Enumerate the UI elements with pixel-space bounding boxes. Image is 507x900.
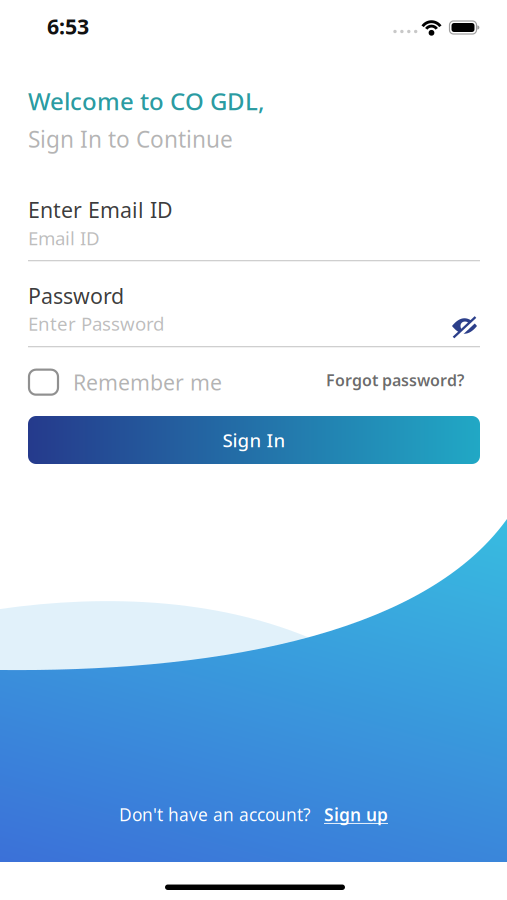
staticText: Remember me [73,368,222,396]
button[interactable]: Sign In [28,416,480,464]
staticText: Sign In to Continue [28,124,233,154]
staticText: 6:53 [47,12,89,40]
button[interactable]: Forgot password? [326,369,464,391]
staticText: Forgot password? [326,369,464,391]
staticText: Email ID [28,225,100,250]
button[interactable]: Sign up [324,803,388,826]
staticText: Sign In [222,428,285,452]
button[interactable]: Remember me [29,368,222,396]
staticText: Don't have an account? [119,803,311,826]
staticText: Sign up [324,803,388,826]
staticText: Enter Email ID [28,195,173,224]
staticText: Welcome to CO GDL, [28,85,265,117]
staticText: Enter Password [28,311,164,336]
button[interactable]: Show password [0,0,507,900]
staticText: Password [28,281,124,310]
